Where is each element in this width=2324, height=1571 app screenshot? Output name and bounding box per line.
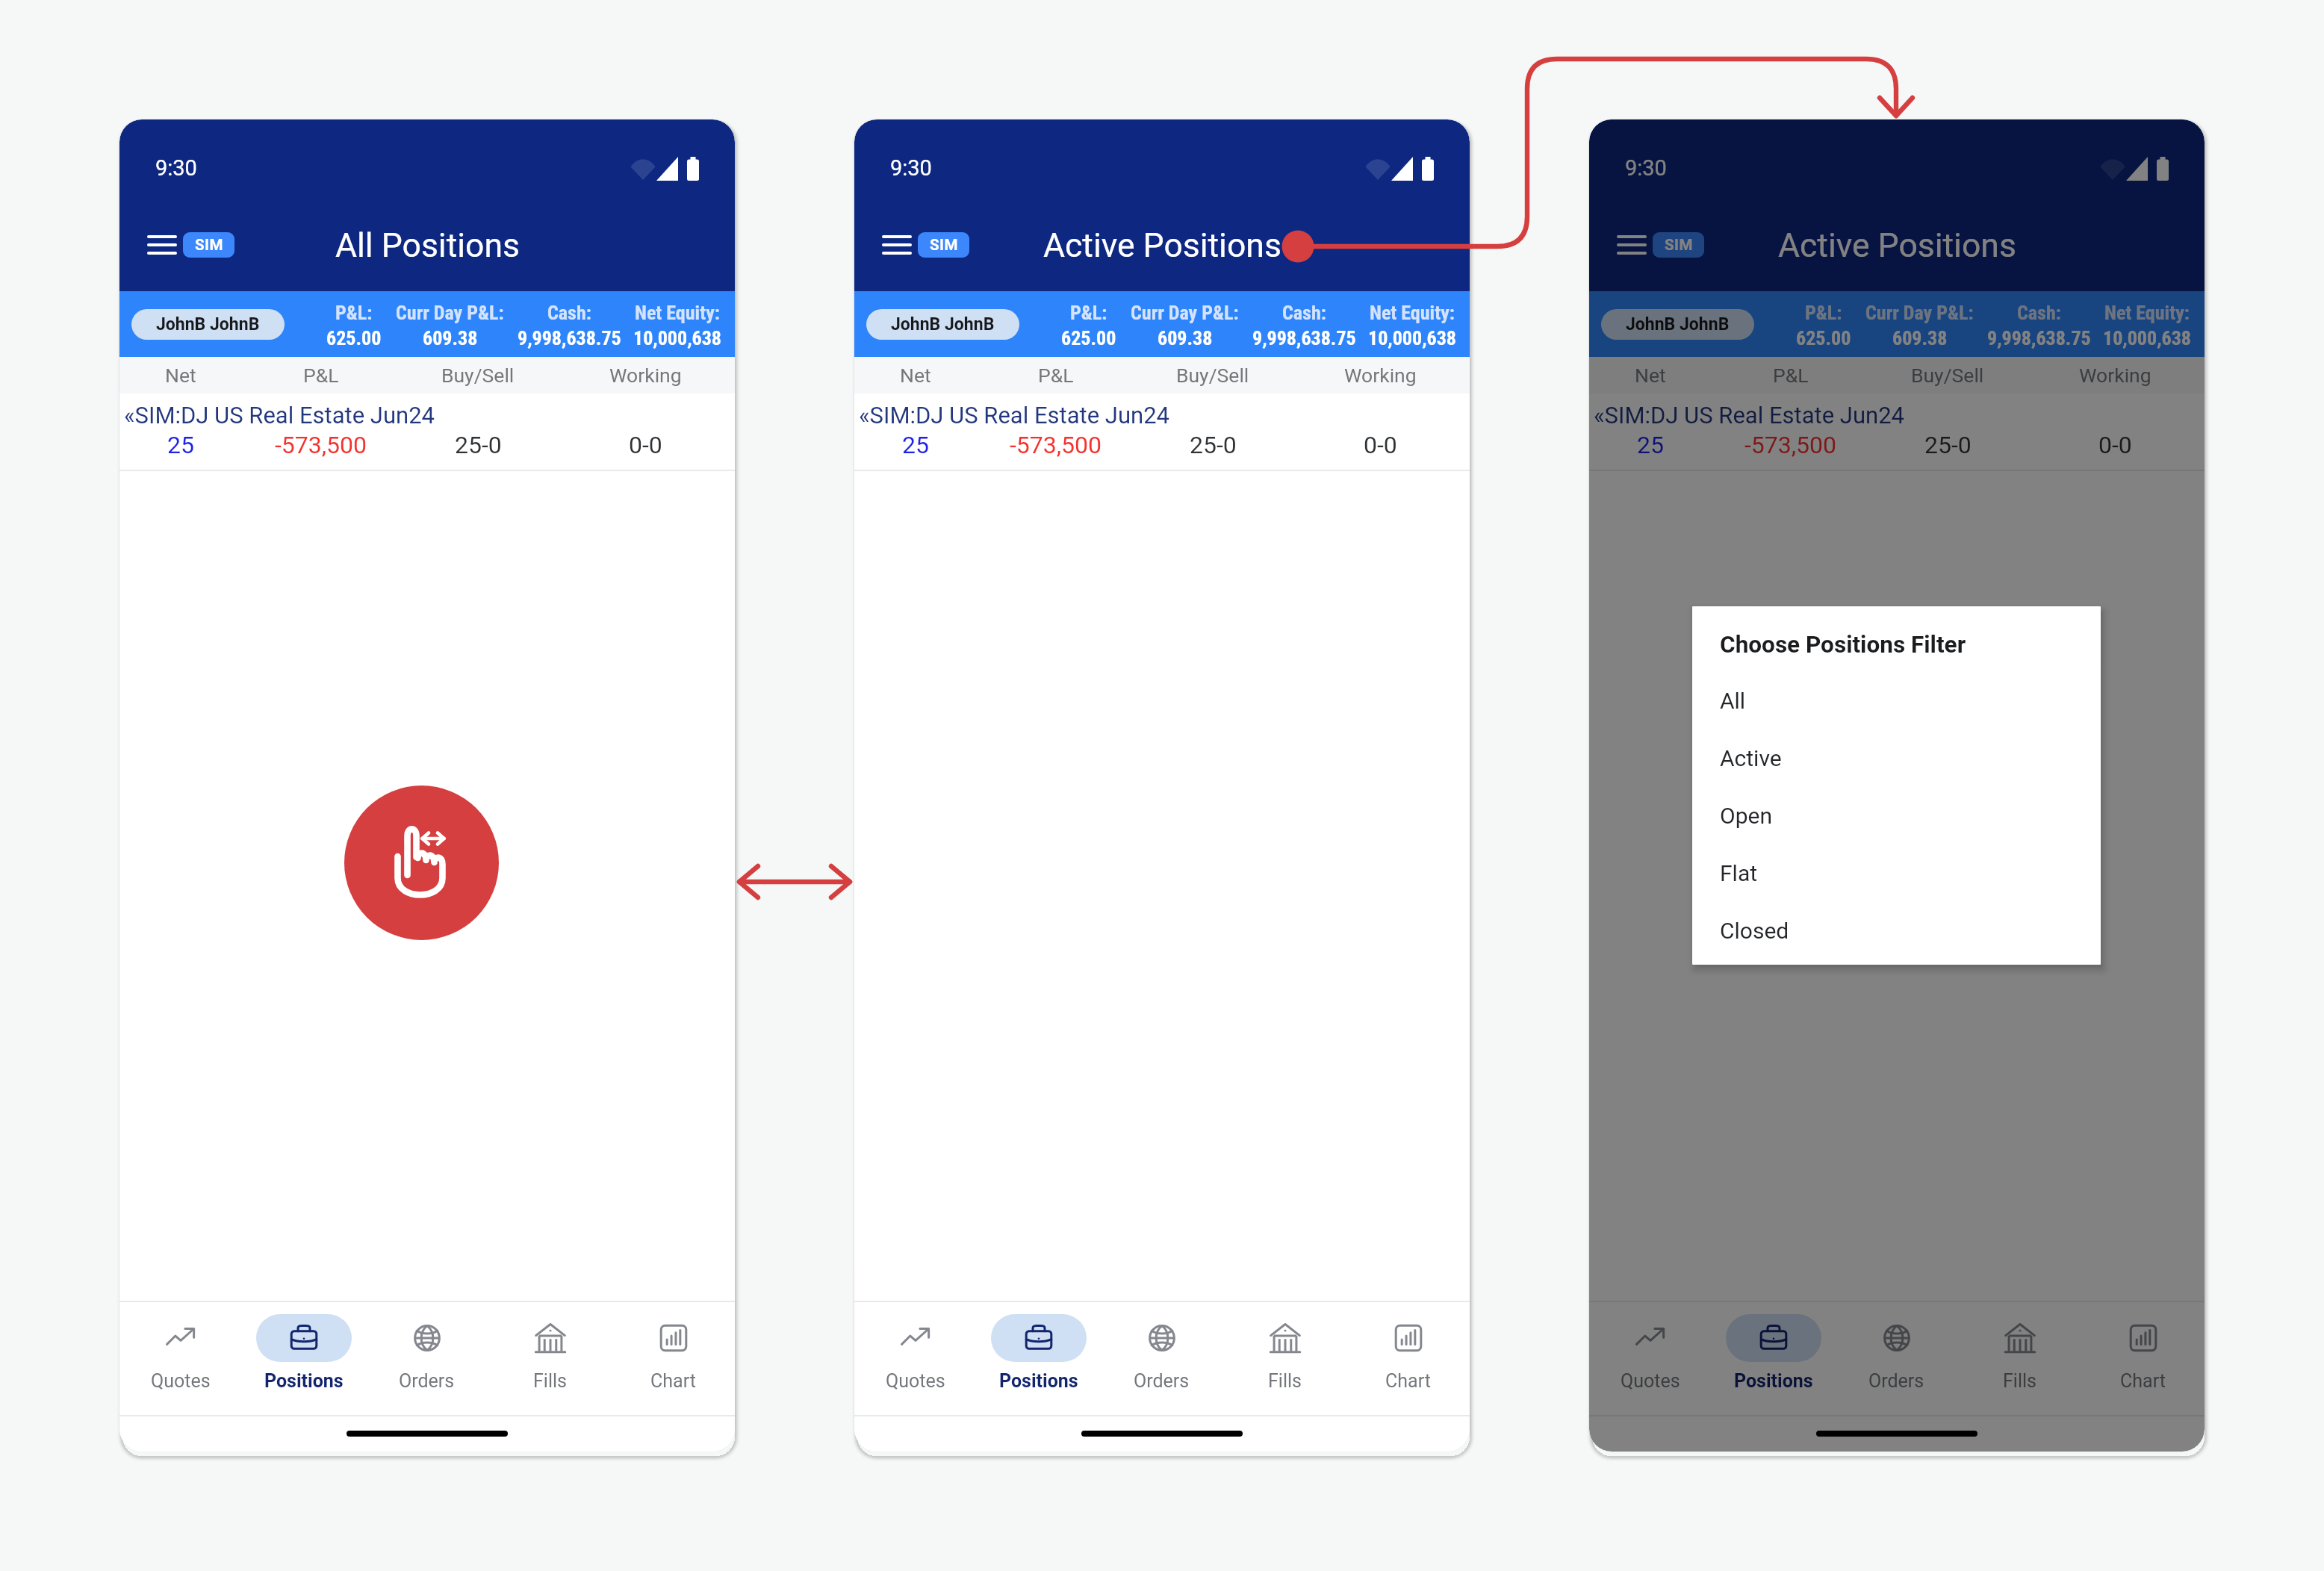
staticText: «SIM:DJ US Real Estate Jun24 bbox=[1594, 402, 1904, 429]
button[interactable]: JohnB JohnB bbox=[1601, 309, 1754, 340]
staticText: 10,000,638 bbox=[633, 327, 721, 349]
button[interactable]: SIM bbox=[1653, 232, 1704, 258]
button[interactable]: Chart bbox=[612, 1302, 735, 1415]
button[interactable]: «SIM:DJ US Real Estate Jun24 bbox=[1589, 393, 2205, 470]
staticText: Chart bbox=[2120, 1370, 2166, 1392]
staticText: Positions bbox=[999, 1370, 1078, 1392]
staticText: 9,998,638.75 bbox=[1252, 327, 1356, 349]
staticText: JohnB JohnB bbox=[1626, 314, 1730, 335]
button[interactable]: Open navigation menu bbox=[1612, 227, 1651, 263]
button[interactable]: SIM bbox=[918, 232, 969, 258]
staticText: Positions bbox=[1734, 1370, 1813, 1392]
staticText: Active Positions bbox=[1043, 226, 1281, 265]
button[interactable]: SIM bbox=[183, 232, 234, 258]
staticText: -573,500 bbox=[1744, 431, 1837, 459]
staticText: Curr Day P&L: bbox=[1865, 302, 1974, 324]
button[interactable]: Positions bbox=[242, 1302, 365, 1415]
staticText: 9:30 bbox=[155, 155, 197, 181]
staticText: Open bbox=[1720, 803, 1772, 829]
staticText: All bbox=[1720, 688, 1746, 714]
button[interactable]: JohnB JohnB bbox=[866, 309, 1019, 340]
button[interactable]: Open navigation menu bbox=[143, 227, 181, 263]
staticText: P&L: bbox=[1070, 302, 1107, 324]
button[interactable]: «SIM:DJ US Real Estate Jun24 bbox=[119, 393, 735, 470]
staticText: P&L bbox=[303, 364, 339, 387]
button[interactable]: Swipe to switch position filter bbox=[344, 785, 499, 940]
staticText: P&L: bbox=[1805, 302, 1842, 324]
staticText: Active bbox=[1720, 745, 1782, 771]
staticText: Curr Day P&L: bbox=[396, 302, 504, 324]
button[interactable]: Positions bbox=[977, 1302, 1100, 1415]
staticText: Net bbox=[900, 364, 931, 387]
staticText: Fills bbox=[1268, 1370, 1302, 1392]
staticText: 25-0 bbox=[1924, 431, 1972, 459]
button[interactable]: «SIM:DJ US Real Estate Jun24 bbox=[854, 393, 1470, 470]
button[interactable]: Chart bbox=[1346, 1302, 1470, 1415]
button[interactable]: All bbox=[1692, 672, 2101, 729]
staticText: 625.00 bbox=[1061, 327, 1116, 349]
staticText: Positions bbox=[264, 1370, 344, 1392]
staticText: Working bbox=[609, 364, 682, 387]
staticText: «SIM:DJ US Real Estate Jun24 bbox=[124, 402, 435, 429]
staticText: 25-0 bbox=[455, 431, 502, 459]
staticText: Working bbox=[2079, 364, 2151, 387]
staticText: Quotes bbox=[1621, 1370, 1680, 1392]
button[interactable]: Orders bbox=[365, 1302, 488, 1415]
staticText: 609.38 bbox=[1892, 327, 1948, 349]
staticText: -573,500 bbox=[275, 431, 367, 459]
staticText: Buy/Sell bbox=[1911, 364, 1984, 387]
button[interactable]: Orders bbox=[1835, 1302, 1958, 1415]
staticText: JohnB JohnB bbox=[156, 314, 260, 335]
staticText: Quotes bbox=[886, 1370, 945, 1392]
staticText: 609.38 bbox=[423, 327, 478, 349]
staticText: Chart bbox=[650, 1370, 696, 1392]
button[interactable]: Fills bbox=[1958, 1302, 2081, 1415]
staticText: 0-0 bbox=[1364, 431, 1397, 459]
staticText: 25-0 bbox=[1190, 431, 1237, 459]
button[interactable]: Quotes bbox=[854, 1302, 977, 1415]
staticText: 625.00 bbox=[326, 327, 382, 349]
staticText: Fills bbox=[533, 1370, 567, 1392]
button[interactable]: Active bbox=[1692, 729, 2101, 787]
staticText: 25 bbox=[902, 431, 929, 459]
staticText: Cash: bbox=[1282, 302, 1326, 324]
staticText: Net Equity: bbox=[1370, 302, 1455, 324]
button[interactable]: Open bbox=[1692, 787, 2101, 844]
staticText: Buy/Sell bbox=[1176, 364, 1249, 387]
staticText: 25 bbox=[167, 431, 194, 459]
staticText: 0-0 bbox=[629, 431, 662, 459]
staticText: Orders bbox=[399, 1370, 455, 1392]
button[interactable]: Chart bbox=[2081, 1302, 2205, 1415]
staticText: SIM bbox=[930, 236, 958, 254]
staticText: Orders bbox=[1868, 1370, 1924, 1392]
staticText: Curr Day P&L: bbox=[1131, 302, 1239, 324]
button[interactable]: Fills bbox=[1223, 1302, 1346, 1415]
button[interactable]: Orders bbox=[1100, 1302, 1223, 1415]
button[interactable]: Flat bbox=[1692, 844, 2101, 902]
staticText: Active Positions bbox=[1778, 226, 2016, 265]
staticText: Quotes bbox=[151, 1370, 211, 1392]
staticText: Fills bbox=[2003, 1370, 2036, 1392]
staticText: 9,998,638.75 bbox=[518, 327, 621, 349]
button[interactable]: Quotes bbox=[1589, 1302, 1712, 1415]
staticText: 625.00 bbox=[1796, 327, 1851, 349]
staticText: Working bbox=[1344, 364, 1417, 387]
button[interactable]: Closed bbox=[1692, 902, 2101, 959]
staticText: Net bbox=[165, 364, 196, 387]
staticText: 609.38 bbox=[1158, 327, 1213, 349]
button[interactable]: Open navigation menu bbox=[877, 227, 916, 263]
button[interactable]: Fills bbox=[488, 1302, 612, 1415]
staticText: P&L bbox=[1773, 364, 1809, 387]
button[interactable]: Quotes bbox=[119, 1302, 242, 1415]
staticText: 10,000,638 bbox=[2103, 327, 2191, 349]
staticText: 9:30 bbox=[1625, 155, 1667, 181]
staticText: Net Equity: bbox=[635, 302, 720, 324]
staticText: Net Equity: bbox=[2104, 302, 2190, 324]
button[interactable]: Positions bbox=[1712, 1302, 1835, 1415]
staticText: 9:30 bbox=[890, 155, 932, 181]
staticText: «SIM:DJ US Real Estate Jun24 bbox=[859, 402, 1169, 429]
staticText: Chart bbox=[1385, 1370, 1431, 1392]
staticText: Cash: bbox=[547, 302, 591, 324]
button[interactable]: JohnB JohnB bbox=[131, 309, 285, 340]
staticText: 10,000,638 bbox=[1368, 327, 1456, 349]
